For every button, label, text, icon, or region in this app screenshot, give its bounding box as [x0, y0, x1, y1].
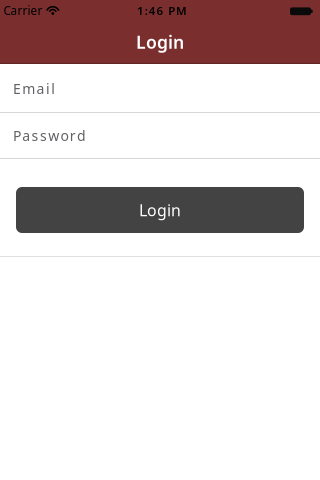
button[interactable]: Password — [0, 113, 320, 158]
staticText: Login — [136, 30, 184, 54]
staticText: Carrier — [4, 2, 43, 18]
staticText: Password — [13, 126, 86, 145]
button[interactable]: Email — [0, 64, 320, 112]
staticText: Login — [139, 199, 181, 221]
staticText: Email — [13, 79, 55, 98]
staticText: 1:46 PM — [137, 3, 187, 18]
button[interactable]: Login — [16, 187, 304, 233]
